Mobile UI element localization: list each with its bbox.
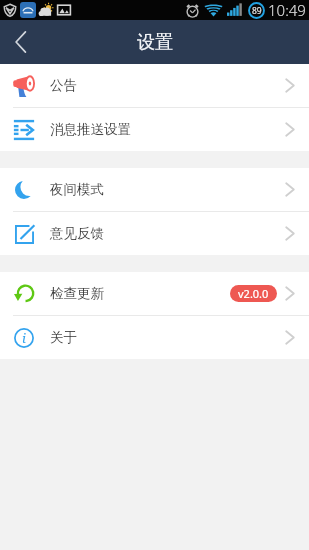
staticText: 89 [252,5,262,17]
button[interactable]: Back [0,20,40,64]
button[interactable]: 夜间模式 [0,168,309,211]
staticText: 检查更新 [50,285,104,302]
staticText: 设置 [137,31,173,54]
staticText: 公告 [50,77,77,94]
button[interactable]: 消息推送设置 [0,108,309,151]
staticText: i [22,329,26,347]
staticText: 10:49 [268,0,306,20]
button[interactable]: i [0,316,309,359]
staticText: 意见反馈 [50,225,104,242]
staticText: 消息推送设置 [50,121,131,138]
staticText: 关于 [50,329,77,346]
button[interactable]: 公告 [0,64,309,107]
button[interactable]: 检查更新 [0,272,309,315]
button[interactable]: 意见反馈 [0,212,309,255]
staticText: v2.0.0 [238,286,269,301]
staticText: 夜间模式 [50,181,104,198]
